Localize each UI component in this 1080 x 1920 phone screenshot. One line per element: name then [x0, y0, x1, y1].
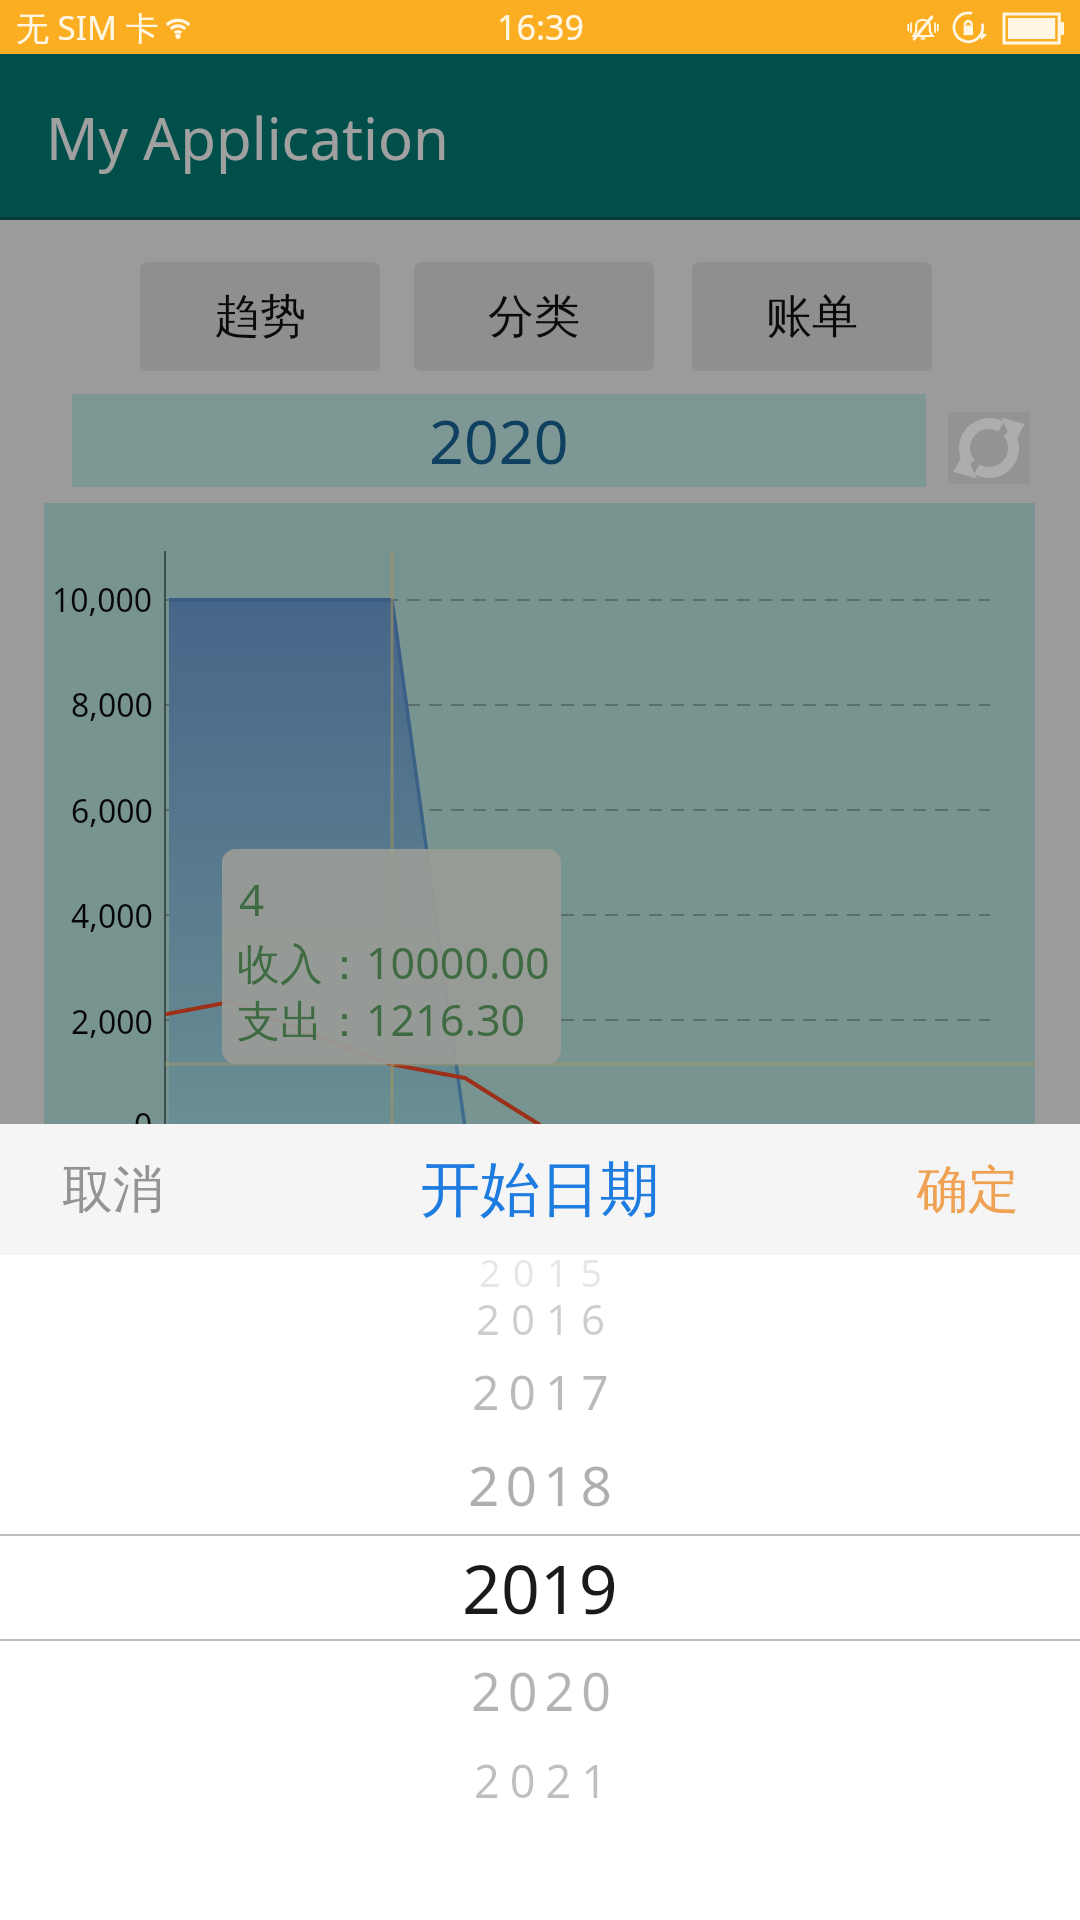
- staticText: 收入：10000.00: [237, 933, 550, 992]
- button[interactable]: 2020: [0, 1640, 1080, 1740]
- staticText: 2018: [468, 1447, 618, 1522]
- button[interactable]: 2021: [0, 1730, 1080, 1830]
- staticText: 2016: [476, 1290, 617, 1347]
- button[interactable]: 2020: [72, 394, 926, 487]
- staticText: 开始日期: [420, 1152, 660, 1228]
- staticText: 账单: [766, 288, 858, 346]
- staticText: 取消: [62, 1158, 164, 1222]
- staticText: 趋势: [214, 288, 306, 346]
- staticText: 0: [134, 1103, 153, 1147]
- staticText: 确定: [917, 1158, 1019, 1222]
- button[interactable]: 2018: [0, 1434, 1080, 1534]
- staticText: 10,000: [52, 578, 153, 622]
- button[interactable]: 趋势: [140, 262, 380, 371]
- staticText: 2,000: [71, 1000, 153, 1044]
- button[interactable]: 分类: [414, 262, 654, 371]
- staticText: 2017: [472, 1359, 618, 1424]
- button[interactable]: 2017: [0, 1341, 1080, 1441]
- staticText: 2020: [429, 399, 569, 482]
- staticText: 6,000: [71, 789, 153, 833]
- staticText: 16:39: [497, 4, 584, 50]
- staticText: 2020: [471, 1655, 618, 1726]
- staticText: 2019: [462, 1541, 618, 1634]
- staticText: 无 SIM 卡: [16, 5, 159, 50]
- button[interactable]: 账单: [692, 262, 932, 371]
- staticText: 分类: [488, 288, 580, 346]
- button[interactable]: 2016: [0, 1268, 1080, 1368]
- staticText: 4: [239, 869, 265, 929]
- button[interactable]: 2015: [0, 1222, 1080, 1322]
- staticText: 8,000: [71, 683, 153, 727]
- button[interactable]: 2019: [0, 1537, 1080, 1637]
- staticText: 2021: [474, 1750, 617, 1811]
- staticText: 4,000: [71, 894, 153, 938]
- staticText: 支出：1216.30: [237, 990, 526, 1049]
- button[interactable]: 确定: [917, 1124, 1019, 1255]
- button[interactable]: Refresh: [948, 412, 1030, 484]
- staticText: 2015: [479, 1246, 614, 1298]
- staticText: My Application: [46, 98, 449, 177]
- button[interactable]: 取消: [62, 1124, 164, 1255]
